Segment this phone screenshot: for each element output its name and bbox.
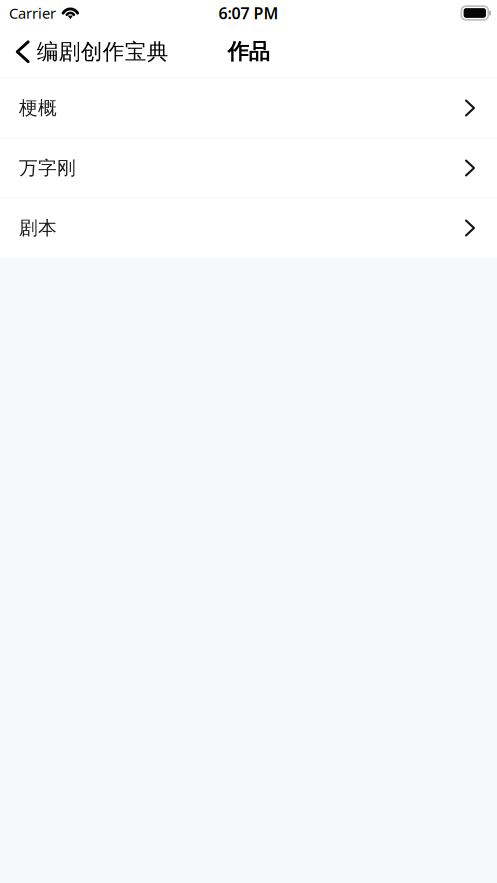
- button[interactable]: 剧本: [0, 198, 497, 257]
- staticText: 6:07 PM: [218, 2, 278, 24]
- staticText: 编剧创作宝典: [37, 38, 169, 65]
- staticText: 作品: [227, 39, 269, 65]
- button[interactable]: 梗概: [0, 78, 497, 137]
- button[interactable]: 万字刚: [0, 138, 497, 197]
- staticText: 万字刚: [19, 156, 76, 179]
- button[interactable]: 返回 编剧创作宝典: [0, 30, 179, 74]
- staticText: 剧本: [19, 216, 57, 239]
- staticText: 梗概: [19, 96, 57, 119]
- staticText: Carrier: [9, 3, 56, 23]
